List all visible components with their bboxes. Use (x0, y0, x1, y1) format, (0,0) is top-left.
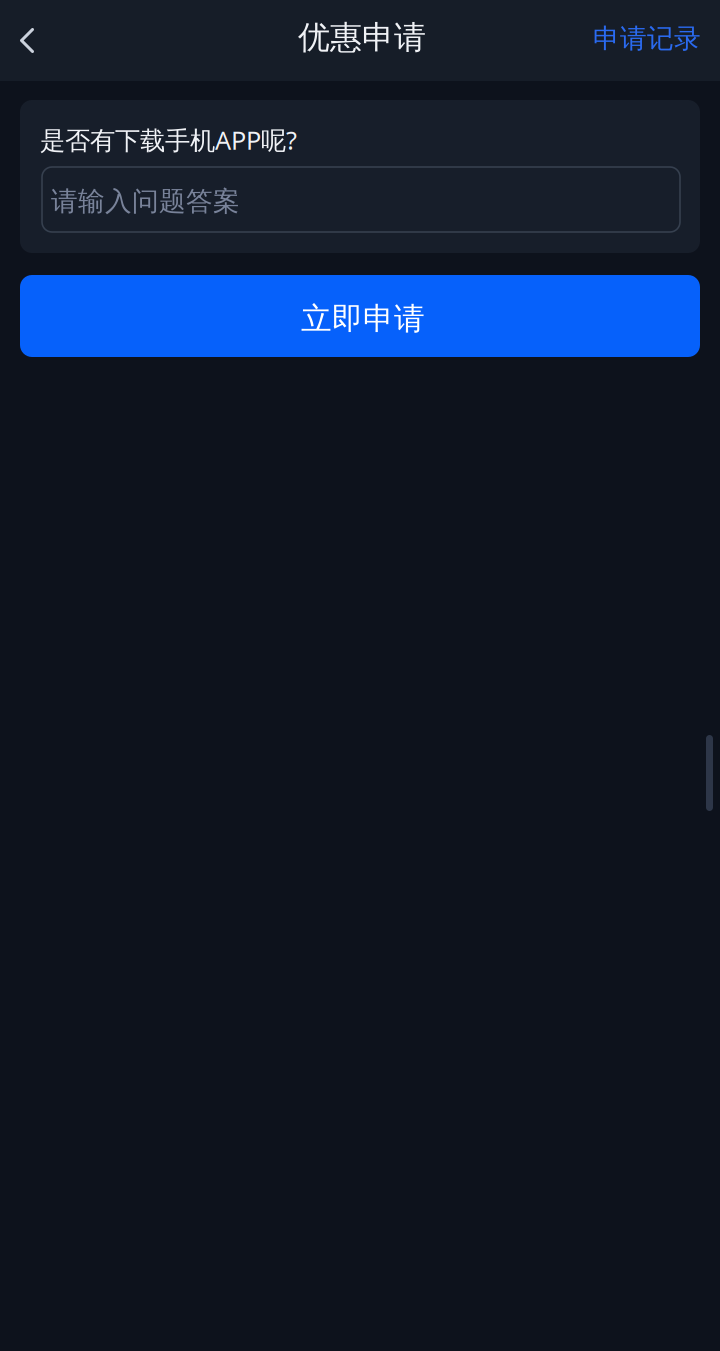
staticText: 申请记录 (593, 22, 701, 55)
staticText: 是否有下载手机APP呢? (40, 123, 297, 157)
button[interactable]: 申请记录 (569, 0, 718, 77)
staticText: 立即申请 (301, 300, 425, 338)
button[interactable]: 请输入问题答案 (42, 167, 680, 232)
staticText: 优惠申请 (298, 18, 426, 57)
button[interactable]: 立即申请 (20, 275, 700, 357)
button[interactable]: 返回 (0, 0, 53, 81)
staticText: 请输入问题答案 (51, 185, 240, 218)
